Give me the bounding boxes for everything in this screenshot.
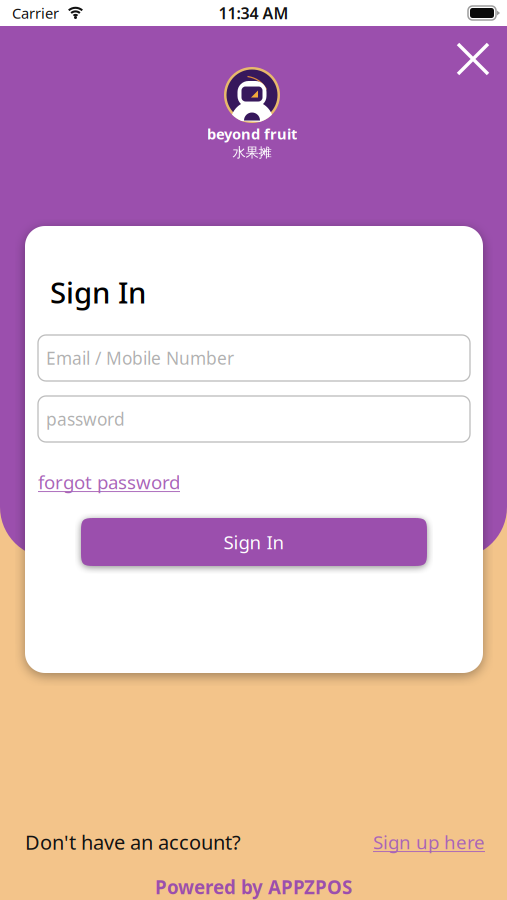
staticText: 水果摊	[232, 144, 271, 161]
staticText: Powered by APPZPOS	[155, 875, 352, 899]
button[interactable]: Sign up here	[373, 827, 485, 857]
staticText: Sign In	[50, 272, 146, 311]
staticText: Email / Mobile Number	[46, 346, 234, 369]
staticText: Sign In	[223, 530, 284, 554]
staticText: beyond fruit	[207, 124, 297, 143]
button[interactable]: Close	[443, 29, 503, 89]
staticText: 11:34 AM	[218, 2, 288, 24]
button[interactable]: Sign In	[81, 518, 427, 566]
button[interactable]: forgot password	[38, 466, 188, 498]
staticText: password	[46, 407, 125, 430]
staticText: Don't have an account?	[25, 829, 241, 855]
staticText: forgot password	[38, 470, 180, 494]
staticText: Sign up here	[373, 830, 485, 854]
staticText: Carrier	[12, 3, 59, 23]
